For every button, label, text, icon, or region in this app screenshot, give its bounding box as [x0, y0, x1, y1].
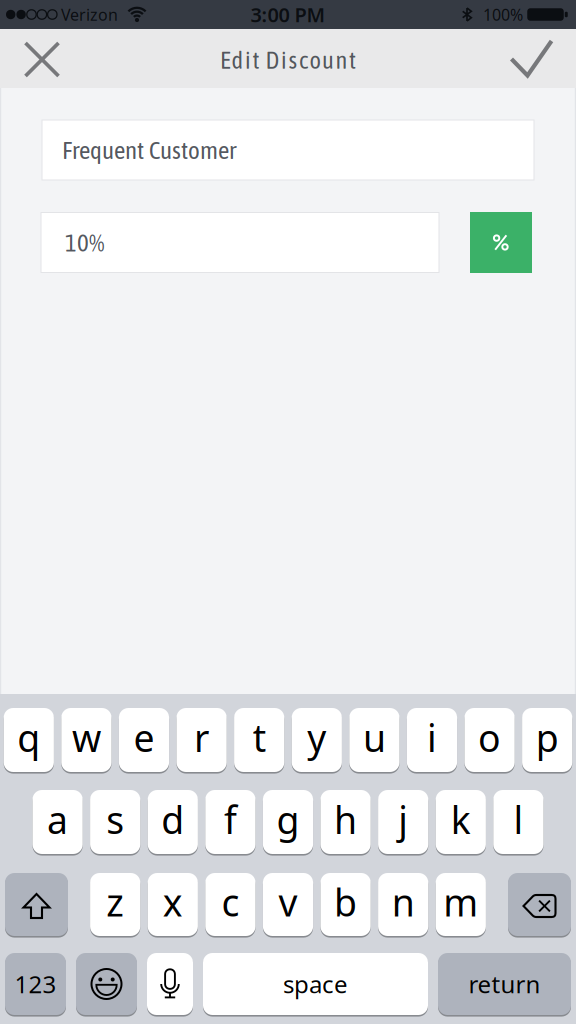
staticText: l — [513, 795, 523, 844]
staticText: w — [72, 713, 101, 762]
button[interactable]: g — [263, 790, 313, 854]
staticText: Verizon — [61, 4, 118, 25]
staticText: p — [536, 713, 559, 762]
button[interactable]: q — [4, 708, 54, 772]
staticText: 10% — [65, 228, 105, 257]
staticText: Edit Discount — [220, 46, 356, 74]
button[interactable]: x — [148, 873, 198, 936]
staticText: 123 — [14, 968, 56, 1000]
button[interactable]: c — [205, 873, 255, 936]
button[interactable]: Discount amount — [41, 212, 439, 272]
button[interactable]: return — [438, 953, 571, 1015]
staticText: u — [363, 713, 386, 762]
button[interactable]: e — [119, 708, 169, 772]
staticText: z — [106, 877, 124, 927]
button[interactable]: Percent discount — [470, 212, 532, 273]
staticText: d — [161, 795, 184, 844]
button[interactable]: Emoji — [76, 953, 137, 1015]
button[interactable]: Save — [511, 29, 576, 87]
staticText: Frequent Customer — [62, 136, 236, 164]
button[interactable]: Delete — [508, 873, 571, 936]
staticText: f — [224, 795, 237, 844]
staticText: r — [194, 713, 209, 762]
staticText: m — [443, 877, 478, 927]
staticText: i — [427, 713, 437, 762]
staticText: 100% — [483, 4, 523, 25]
button[interactable]: y — [292, 708, 342, 772]
staticText: j — [398, 795, 408, 844]
button[interactable]: z — [90, 873, 140, 936]
button[interactable]: v — [263, 873, 313, 936]
button[interactable]: Shift — [5, 873, 68, 936]
staticText: x — [163, 877, 183, 927]
button[interactable]: s — [90, 790, 140, 854]
button[interactable]: Dictate — [147, 953, 193, 1015]
button[interactable]: r — [176, 708, 227, 772]
staticText: q — [17, 713, 40, 762]
button[interactable]: d — [148, 790, 198, 854]
button[interactable]: b — [320, 873, 371, 936]
staticText: a — [47, 795, 68, 844]
button[interactable]: h — [320, 790, 371, 854]
button[interactable]: n — [378, 873, 428, 936]
staticText: 3:00 PM — [250, 1, 325, 28]
button[interactable]: a — [32, 790, 83, 854]
staticText: t — [253, 713, 266, 762]
button[interactable]: f — [205, 790, 255, 854]
staticText: b — [334, 877, 357, 927]
staticText: v — [278, 877, 297, 927]
staticText: g — [276, 795, 299, 844]
staticText: c — [221, 877, 239, 927]
button[interactable]: o — [464, 708, 515, 772]
staticText: e — [133, 713, 154, 762]
button[interactable]: u — [349, 708, 399, 772]
button[interactable]: Discount name — [42, 120, 534, 180]
button[interactable]: j — [378, 790, 428, 854]
staticText: space — [283, 968, 348, 1000]
button[interactable]: p — [522, 708, 572, 772]
button[interactable]: Close — [0, 29, 59, 87]
staticText: k — [451, 795, 471, 844]
button[interactable]: Numbers — [5, 953, 66, 1015]
staticText: h — [334, 795, 357, 844]
staticText: o — [478, 713, 501, 762]
button[interactable]: t — [234, 708, 284, 772]
button[interactable]: i — [407, 708, 457, 772]
button[interactable]: w — [61, 708, 111, 772]
button[interactable]: l — [493, 790, 543, 854]
staticText: s — [106, 795, 124, 844]
button[interactable]: space — [203, 953, 428, 1015]
staticText: return — [468, 968, 540, 1000]
staticText: y — [307, 713, 326, 762]
button[interactable]: m — [436, 873, 486, 936]
button[interactable]: k — [436, 790, 486, 854]
staticText: n — [392, 877, 415, 927]
